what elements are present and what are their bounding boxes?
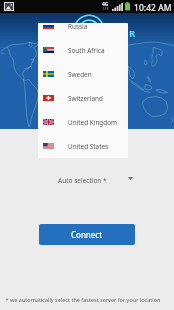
button[interactable]: United States — [38, 134, 128, 158]
staticText: 10:42 AM — [134, 2, 172, 14]
button[interactable]: Russia — [38, 23, 128, 38]
staticText: United States — [68, 142, 109, 151]
staticText: Connect — [71, 229, 103, 240]
button[interactable]: Switzerland — [38, 86, 128, 110]
staticText: R — [129, 27, 136, 40]
button[interactable]: Sweden — [38, 62, 128, 86]
staticText: Russia — [68, 23, 88, 31]
button[interactable]: South Africa — [38, 38, 128, 62]
staticText: United Kingdom — [68, 118, 118, 127]
staticText: 4G — [102, 1, 109, 8]
staticText: Auto selection * — [58, 176, 107, 185]
button[interactable]: United Kingdom — [38, 110, 128, 134]
staticText: LTE — [103, 6, 109, 11]
staticText: * we automatically select the fastest se… — [0, 296, 170, 303]
staticText: Sweden — [68, 70, 92, 79]
staticText: Switzerland — [68, 94, 103, 103]
staticText: South Africa — [68, 46, 105, 55]
button[interactable]: Auto selection * — [53, 172, 135, 188]
button[interactable]: Connect — [39, 224, 135, 245]
